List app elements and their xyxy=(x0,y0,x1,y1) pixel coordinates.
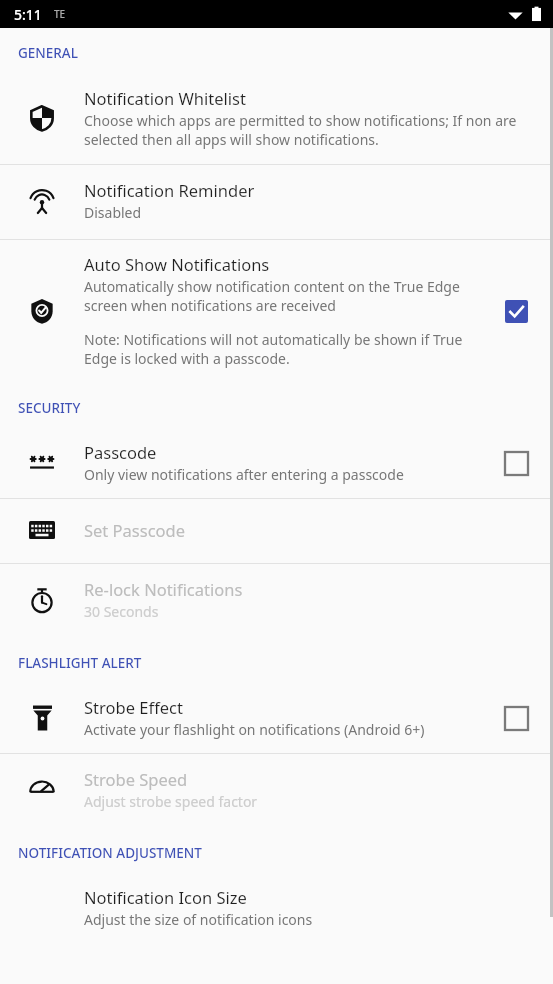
button[interactable]: Notification Icon Size xyxy=(0,874,553,943)
staticText: TE xyxy=(54,7,66,21)
staticText: Note: Notifications will not automatical… xyxy=(84,330,469,368)
staticText: 5:11 xyxy=(14,5,42,24)
staticText: Auto Show Notifications xyxy=(84,253,270,275)
button[interactable]: Notification Whitelist xyxy=(0,74,553,164)
button[interactable]: Unchecked xyxy=(497,444,535,482)
staticText: Choose which apps are permitted to show … xyxy=(84,111,533,149)
button[interactable]: Set Passcode xyxy=(0,499,553,563)
staticText: Only view notifications after entering a… xyxy=(84,465,404,484)
button[interactable]: Re-lock Notifications xyxy=(0,564,553,638)
staticText: Notification Icon Size xyxy=(84,886,247,908)
staticText: Strobe Effect xyxy=(84,696,183,718)
staticText: Passcode xyxy=(84,441,157,463)
staticText: Adjust the size of notification icons xyxy=(84,910,313,929)
staticText: Re-lock Notifications xyxy=(84,578,243,600)
staticText: Activate your flashlight on notification… xyxy=(84,720,425,739)
staticText: NOTIFICATION ADJUSTMENT xyxy=(18,844,202,862)
staticText: 30 Seconds xyxy=(84,602,159,621)
staticText: Notification Whitelist xyxy=(84,87,246,109)
staticText: Notification Reminder xyxy=(84,179,255,201)
button[interactable]: Notification Reminder xyxy=(0,165,553,239)
staticText: FLASHLIGHT ALERT xyxy=(18,654,142,672)
staticText: Automatically show notification content … xyxy=(84,277,469,315)
button[interactable]: Passcode xyxy=(0,429,553,498)
staticText: Strobe Speed xyxy=(84,768,188,790)
button[interactable]: Checked xyxy=(497,292,535,330)
button[interactable]: Unchecked xyxy=(497,699,535,737)
button[interactable]: Auto Show Notifications xyxy=(0,240,553,383)
button[interactable]: Strobe Speed xyxy=(0,754,553,828)
staticText: GENERAL xyxy=(18,44,78,62)
button[interactable]: Strobe Effect xyxy=(0,684,553,753)
staticText: Adjust strobe speed factor xyxy=(84,792,258,811)
staticText: SECURITY xyxy=(18,399,81,417)
staticText: Disabled xyxy=(84,203,142,222)
staticText: Set Passcode xyxy=(84,519,186,541)
